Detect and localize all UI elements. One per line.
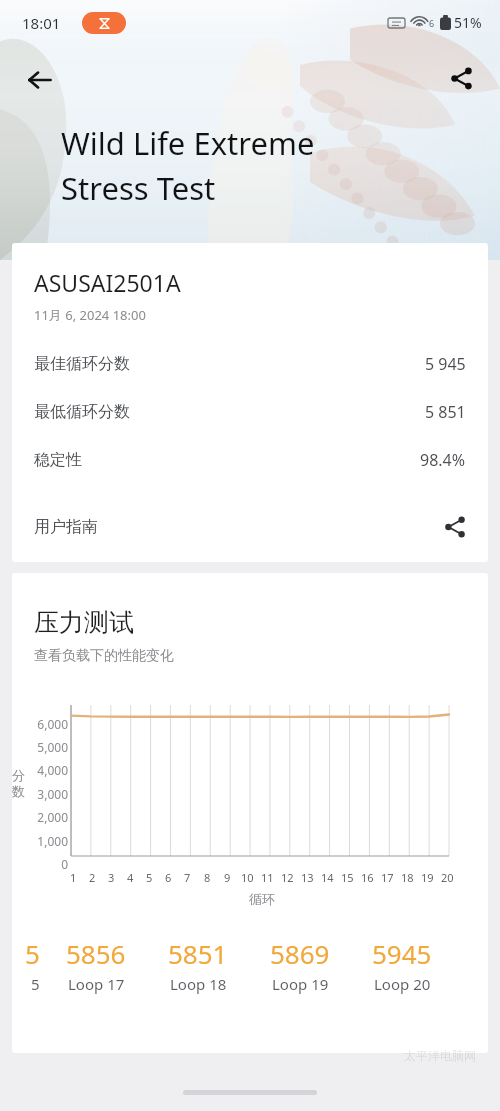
staticText: 13: [301, 870, 314, 885]
button[interactable]: 5: [16, 925, 40, 1005]
button[interactable]: 5869: [255, 925, 345, 1005]
staticText: Loop 20: [374, 974, 431, 994]
staticText: 太平洋电脑网: [404, 1048, 476, 1063]
staticText: 6,000: [22, 716, 68, 732]
staticText: ASUSAI2501A: [34, 267, 181, 298]
staticText: 2: [89, 870, 96, 885]
staticText: 18:01: [22, 13, 61, 33]
staticText: 查看负载下的性能变化: [34, 647, 174, 665]
staticText: 6: [429, 17, 435, 29]
staticText: 5 851: [425, 401, 466, 423]
button[interactable]: Back: [14, 54, 66, 106]
staticText: 9: [224, 870, 231, 885]
staticText: 17: [381, 870, 394, 885]
staticText: 分: [12, 767, 25, 783]
staticText: 4: [127, 870, 134, 885]
staticText: 5856: [66, 936, 126, 971]
staticText: 8: [204, 870, 211, 885]
staticText: 稳定性: [34, 450, 82, 470]
button[interactable]: 5856: [51, 925, 141, 1005]
staticText: 10: [241, 870, 254, 885]
staticText: 14: [321, 870, 334, 885]
staticText: 5851: [168, 936, 228, 971]
button[interactable]: 5945: [357, 925, 447, 1005]
button[interactable]: 用户指南: [12, 504, 488, 550]
staticText: 用户指南: [34, 517, 98, 537]
staticText: 最佳循环分数: [34, 354, 130, 374]
staticText: Stress Test: [61, 167, 216, 209]
staticText: Loop 17: [68, 974, 125, 994]
staticText: 12: [281, 870, 294, 885]
staticText: 5945: [372, 936, 432, 971]
staticText: 1: [70, 870, 77, 885]
staticText: 7: [184, 870, 191, 885]
button[interactable]: Share: [435, 52, 487, 104]
staticText: 1,000: [22, 833, 68, 849]
staticText: Loop 19: [272, 974, 329, 994]
staticText: 3,000: [22, 786, 68, 802]
staticText: Wild Life Extreme: [61, 122, 315, 164]
staticText: 11月 6, 2024 18:00: [34, 306, 146, 324]
staticText: 18: [401, 870, 414, 885]
staticText: 20: [441, 870, 454, 885]
staticText: 5869: [270, 936, 330, 971]
staticText: 5: [146, 870, 153, 885]
staticText: 最低循环分数: [34, 402, 130, 422]
button[interactable]: 5851: [153, 925, 243, 1005]
staticText: 15: [341, 870, 354, 885]
staticText: 循环: [249, 891, 275, 907]
staticText: 11: [261, 870, 274, 885]
staticText: 0: [22, 856, 68, 872]
staticText: 5: [25, 936, 40, 971]
staticText: 5,000: [22, 739, 68, 755]
staticText: 4,000: [22, 762, 68, 778]
staticText: 6: [165, 870, 172, 885]
staticText: Loop 18: [170, 974, 227, 994]
staticText: 98.4%: [420, 449, 466, 471]
staticText: 3: [108, 870, 115, 885]
staticText: 2,000: [22, 809, 68, 825]
staticText: 51%: [454, 13, 482, 32]
staticText: 5: [31, 974, 40, 994]
staticText: 19: [421, 870, 434, 885]
staticText: 数: [12, 783, 25, 799]
staticText: 压力测试: [34, 607, 134, 638]
staticText: 5 945: [425, 353, 466, 375]
staticText: 16: [361, 870, 374, 885]
